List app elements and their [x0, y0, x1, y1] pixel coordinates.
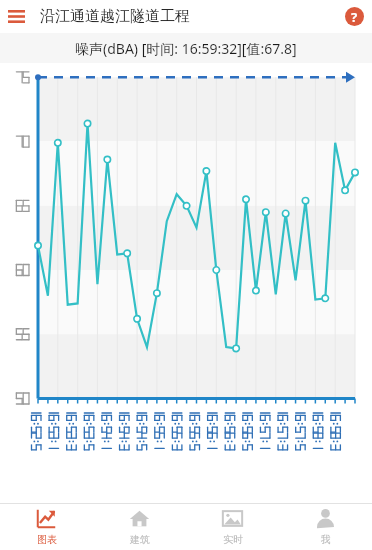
staticText: 噪声(dBA) [时间: 16:59:32][值:67.8] — [75, 39, 297, 58]
staticText: 沿江通道越江隧道工程 — [40, 7, 190, 26]
staticText: ? — [351, 8, 358, 26]
button[interactable]: 图表 — [0, 503, 93, 550]
button[interactable]: 实时 — [186, 503, 279, 550]
button[interactable]: Help — [336, 0, 372, 33]
staticText: 图表 — [37, 533, 57, 546]
button[interactable]: 我 — [279, 503, 372, 550]
staticText: 我 — [321, 533, 331, 546]
button[interactable]: Menu — [0, 0, 33, 33]
staticText: 建筑 — [130, 533, 150, 546]
staticText: 实时 — [223, 533, 243, 546]
button[interactable]: 建筑 — [93, 503, 186, 550]
